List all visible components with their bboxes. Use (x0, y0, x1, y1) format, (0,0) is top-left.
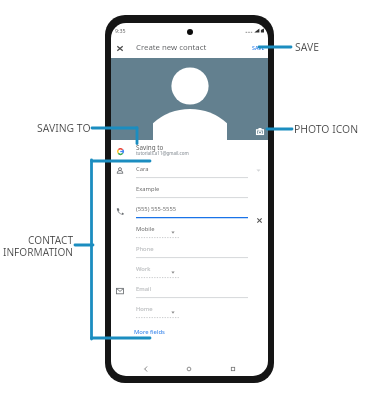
staticText: Cara (136, 165, 149, 173)
staticText: Mobile (136, 225, 155, 233)
staticText: More fields (134, 328, 165, 336)
staticText: 9:35 (115, 27, 126, 34)
button[interactable]: Phone (111, 244, 268, 264)
staticText: SAVE (252, 44, 265, 51)
button[interactable]: Mobile (111, 224, 268, 244)
button[interactable]: Change photo (255, 127, 264, 135)
staticText: SAVE (295, 40, 319, 54)
button[interactable]: Email (111, 284, 268, 304)
button[interactable]: Recent apps (227, 363, 239, 375)
staticText: Create new contact (136, 42, 207, 53)
staticText: Email (136, 285, 151, 293)
button[interactable]: Back (140, 363, 152, 375)
button[interactable]: Home (111, 304, 268, 324)
staticText: Home (136, 305, 153, 313)
staticText: PHOTO ICON (294, 122, 359, 136)
staticText: tutorials.a11@gmail.com (136, 150, 189, 156)
button[interactable]: (555) 555-5555 (111, 204, 268, 224)
button[interactable]: Clear text (253, 214, 265, 226)
staticText: Example (136, 185, 160, 193)
button[interactable]: Home (183, 363, 195, 375)
staticText: Phone (136, 245, 154, 253)
staticText: CONTACT INFORMATION (0, 233, 73, 259)
button[interactable]: Cara (111, 164, 268, 184)
staticText: Saving to (136, 143, 164, 152)
staticText: (555) 555-5555 (136, 205, 177, 213)
button[interactable]: More fields (134, 326, 172, 338)
staticText: SAVING TO (37, 121, 91, 135)
button[interactable]: SAVE (249, 41, 268, 54)
button[interactable]: Work (111, 264, 268, 284)
button[interactable]: Example (111, 184, 268, 204)
button[interactable]: Saving to (111, 141, 268, 158)
staticText: Work (136, 265, 151, 273)
button[interactable]: Close (111, 39, 130, 57)
